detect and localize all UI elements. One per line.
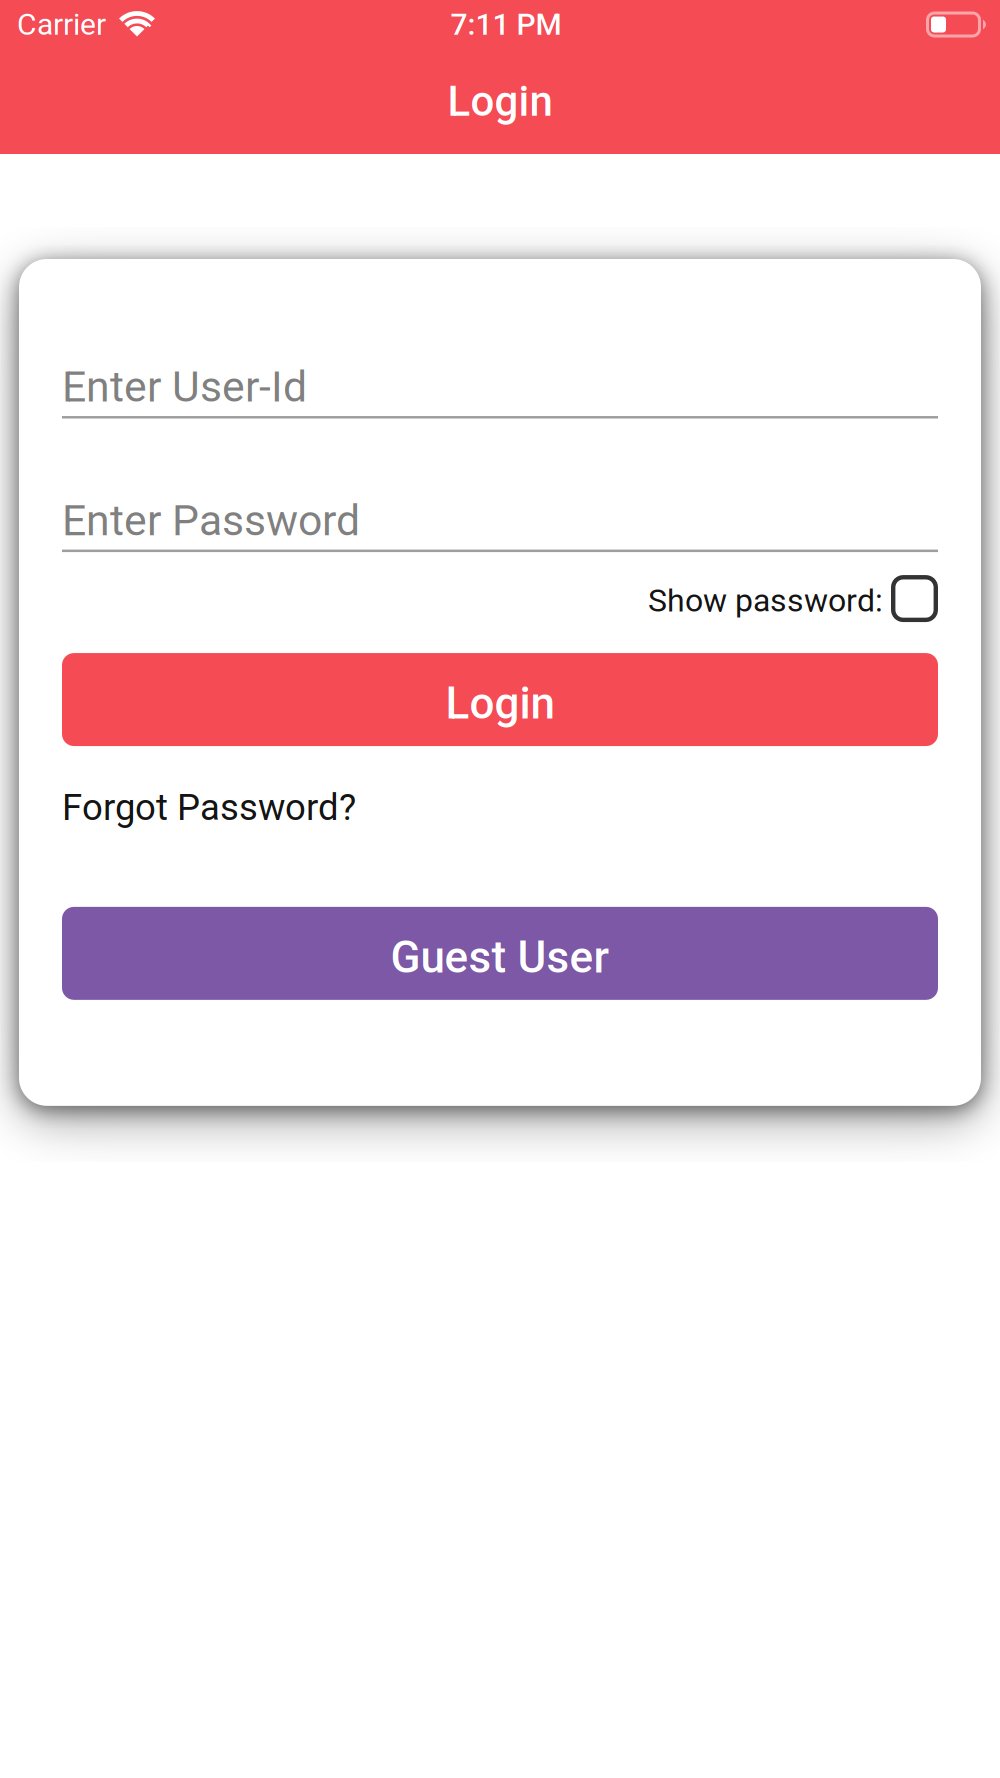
- staticText: Enter User-Id: [62, 362, 307, 412]
- staticText: Enter User-Id: [62, 362, 307, 412]
- staticText: Carrier: [17, 7, 106, 42]
- button[interactable]: Forgot Password?: [62, 786, 356, 829]
- button[interactable]: Show password: [891, 575, 938, 622]
- staticText: Forgot Password?: [62, 786, 356, 829]
- textField[interactable]: Enter Password: [62, 495, 938, 545]
- staticText: 7:11 PM: [450, 7, 561, 42]
- staticText: Show password:: [648, 582, 883, 619]
- staticText: Login: [447, 77, 552, 126]
- staticText: Enter Password: [62, 495, 360, 545]
- staticText: Login: [445, 678, 554, 729]
- staticText: Guest User: [390, 932, 609, 983]
- staticText: Enter Password: [62, 495, 360, 545]
- button[interactable]: Guest User: [62, 907, 938, 1000]
- button[interactable]: Login: [62, 653, 938, 746]
- textField[interactable]: Enter User-Id: [62, 362, 938, 412]
